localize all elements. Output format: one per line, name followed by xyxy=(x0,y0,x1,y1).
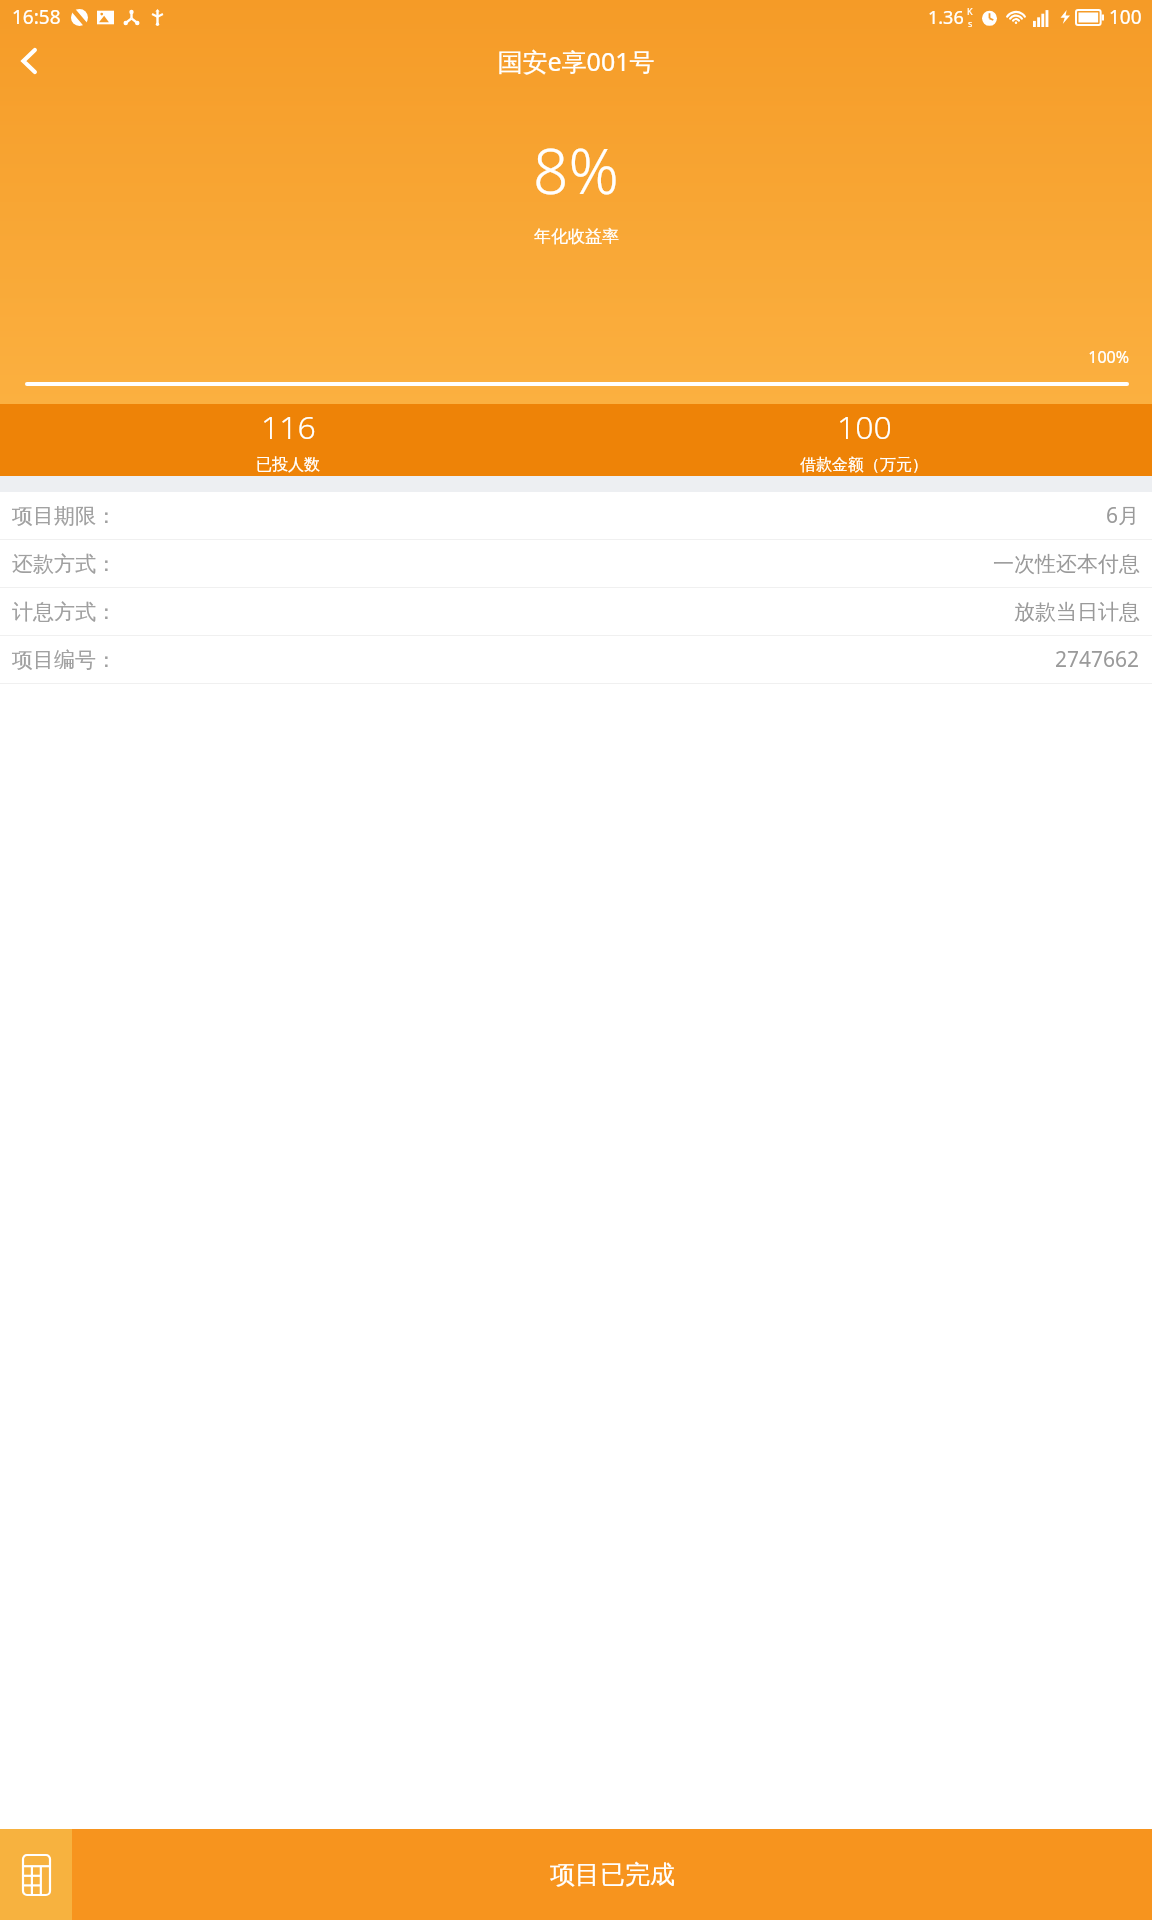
button[interactable]: 项目期限： xyxy=(0,492,1152,539)
staticText: K xyxy=(967,5,973,17)
staticText: 一次性还本付息 xyxy=(993,551,1140,577)
staticText: 100% xyxy=(25,346,1129,368)
button[interactable]: 116 xyxy=(0,404,576,476)
staticText: 100 xyxy=(837,405,892,449)
staticText: 年化收益率 xyxy=(534,226,619,247)
staticText: 项目编号： xyxy=(12,647,117,673)
button[interactable]: 项目编号： xyxy=(0,636,1152,683)
staticText: 项目期限： xyxy=(12,503,117,529)
button[interactable]: Back xyxy=(0,33,60,88)
staticText: 国安e享001号 xyxy=(497,44,655,78)
button[interactable]: 还款方式： xyxy=(0,540,1152,587)
staticText: 放款当日计息 xyxy=(1014,599,1140,625)
staticText: 已投人数 xyxy=(256,455,320,475)
staticText: 借款金额（万元） xyxy=(800,455,928,475)
staticText: s xyxy=(968,17,973,29)
button[interactable]: 项目已完成 xyxy=(72,1829,1152,1920)
staticText: 还款方式： xyxy=(12,551,117,577)
staticText: 16:58 xyxy=(12,4,61,30)
staticText: 116 xyxy=(261,405,316,449)
staticText: 项目已完成 xyxy=(550,1859,675,1890)
button[interactable]: 100 xyxy=(576,404,1152,476)
staticText: 1.36 xyxy=(928,5,964,30)
button[interactable]: Calculator xyxy=(0,1829,72,1920)
staticText: 8% xyxy=(533,128,619,212)
staticText: 100 xyxy=(1109,4,1142,30)
staticText: 2747662 xyxy=(1055,645,1140,674)
button[interactable]: 计息方式： xyxy=(0,588,1152,635)
staticText: 计息方式： xyxy=(12,599,117,625)
staticText: 6月 xyxy=(1106,501,1140,530)
